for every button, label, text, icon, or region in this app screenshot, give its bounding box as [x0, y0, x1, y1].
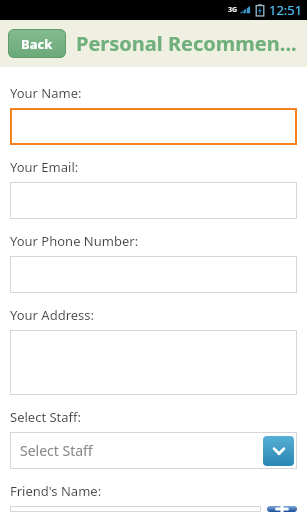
button[interactable]	[10, 108, 297, 145]
button[interactable]: Select Staff	[10, 432, 297, 469]
staticText: 12:51	[269, 1, 303, 19]
button[interactable]	[10, 256, 297, 293]
button[interactable]: Open staff dropdown	[263, 436, 294, 466]
staticText: Back	[21, 35, 53, 53]
staticText: Friend's Name:	[10, 482, 102, 500]
staticText: Select Staff:	[10, 408, 82, 426]
staticText: 3G	[228, 5, 238, 15]
staticText: Your Name:	[10, 84, 82, 102]
button[interactable]	[10, 330, 297, 395]
staticText: Your Address:	[10, 306, 95, 324]
button[interactable]: Back	[8, 29, 66, 58]
staticText: Select Staff	[20, 441, 93, 460]
staticText: Your Phone Number:	[10, 232, 139, 250]
button[interactable]: Add friend	[267, 506, 297, 512]
staticText: Personal Recommen...	[76, 30, 297, 57]
staticText: Your Email:	[10, 158, 79, 176]
button[interactable]	[10, 182, 297, 219]
button[interactable]	[10, 506, 261, 512]
